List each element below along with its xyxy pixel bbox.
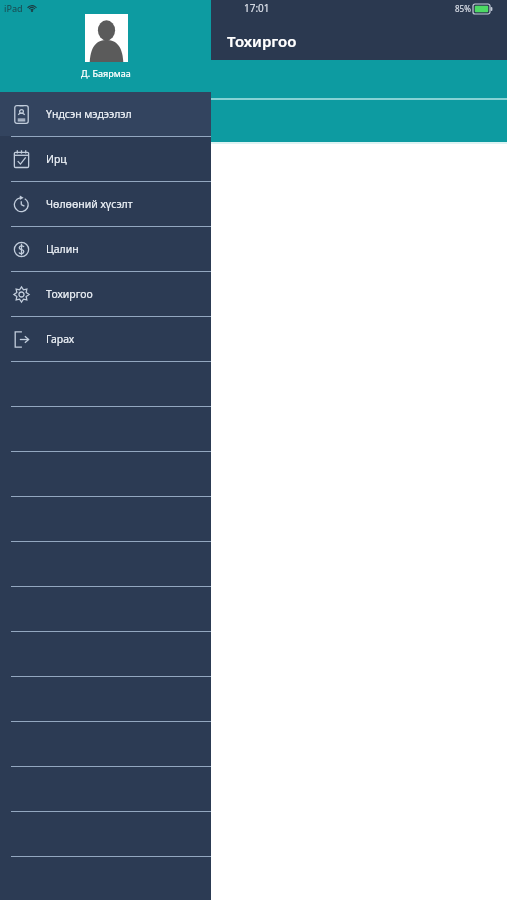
staticText: Цалин: [46, 242, 79, 256]
staticText: 85%: [455, 3, 471, 14]
button[interactable]: Цалин: [0, 227, 211, 271]
staticText: Тохиргоо: [46, 287, 93, 301]
staticText: 17:01: [244, 1, 270, 15]
staticText: Тохиргоо: [227, 31, 297, 51]
button[interactable]: Ирц: [0, 137, 211, 181]
staticText: Ирц: [46, 152, 67, 166]
button[interactable]: Тохиргоо: [0, 272, 211, 316]
staticText: Чөлөөний хүсэлт: [46, 197, 133, 211]
button[interactable]: Үндсэн мэдээлэл: [0, 92, 211, 136]
staticText: Гарах: [46, 332, 75, 346]
staticText: iPad: [4, 2, 23, 14]
button[interactable]: Гарах: [0, 317, 211, 361]
staticText: Үндсэн мэдээлэл: [46, 107, 132, 121]
button[interactable]: Чөлөөний хүсэлт: [0, 182, 211, 226]
staticText: Д. Баярмаа: [81, 67, 131, 79]
